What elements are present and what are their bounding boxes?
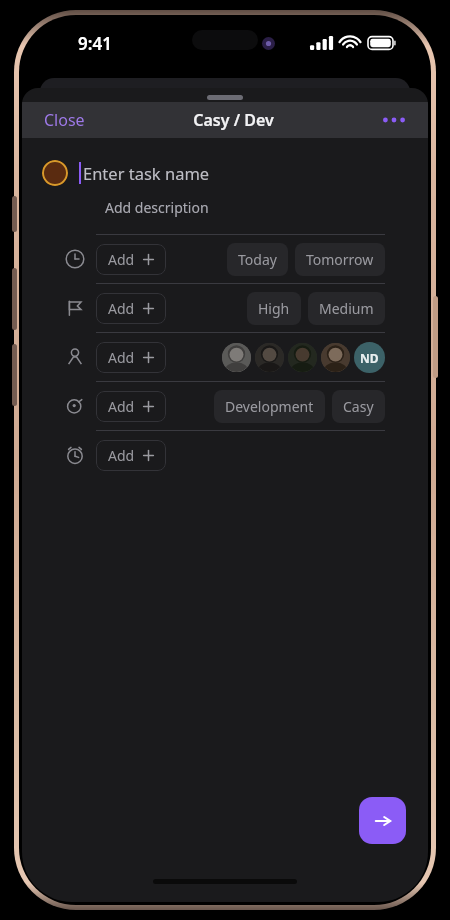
button[interactable]: Submit task — [359, 797, 406, 844]
staticText: Add — [108, 446, 135, 465]
button[interactable]: ND — [354, 342, 385, 373]
staticText: Enter task name — [83, 162, 210, 184]
staticText: Casy / Dev — [193, 109, 274, 131]
staticText: Medium — [319, 299, 374, 318]
button[interactable]: Task color — [42, 160, 68, 186]
staticText: Casy — [343, 397, 374, 416]
staticText: Add — [108, 348, 135, 367]
staticText: Tomorrow — [306, 250, 374, 269]
button[interactable]: Assignee 4 — [321, 343, 350, 372]
button[interactable]: Enter task name — [83, 162, 408, 184]
button[interactable]: Casy — [332, 390, 385, 423]
button[interactable]: Add — [96, 244, 166, 275]
staticText: Add — [108, 250, 135, 269]
button[interactable]: Person — [62, 344, 88, 370]
button[interactable]: High — [247, 292, 301, 325]
staticText: Add — [108, 299, 135, 318]
button[interactable]: Add description — [105, 198, 408, 217]
button[interactable]: Today — [227, 243, 288, 276]
staticText: Close — [44, 109, 85, 131]
button[interactable]: Development — [214, 390, 325, 423]
button[interactable]: Assignee 3 — [288, 343, 317, 372]
staticText: Today — [238, 250, 277, 269]
staticText: Add description — [105, 198, 209, 217]
button[interactable]: Close — [42, 105, 87, 135]
button[interactable]: Clock — [62, 246, 88, 272]
button[interactable]: Add — [96, 293, 166, 324]
staticText: ND — [360, 350, 379, 366]
staticText: Development — [225, 397, 314, 416]
button[interactable]: Flag — [62, 295, 88, 321]
button[interactable]: Assignee 1 — [222, 343, 251, 372]
button[interactable]: Assignee 2 — [255, 343, 284, 372]
button[interactable]: Tomorrow — [295, 243, 385, 276]
staticText: Add — [108, 397, 135, 416]
button[interactable]: Add — [96, 391, 166, 422]
button[interactable]: Tag — [62, 393, 88, 419]
staticText: 9:41 — [78, 32, 112, 55]
button[interactable]: More options — [380, 106, 408, 134]
button[interactable]: Add — [96, 440, 166, 471]
button[interactable]: Alarm — [62, 442, 88, 468]
button[interactable]: Add — [96, 342, 166, 373]
staticText: High — [258, 299, 290, 318]
button[interactable]: Medium — [308, 292, 385, 325]
